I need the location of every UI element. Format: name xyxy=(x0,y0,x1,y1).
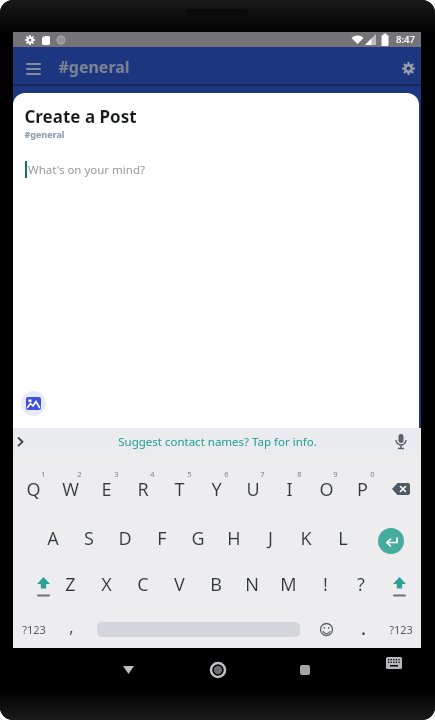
staticText: Suggest contact names? Tap for info. xyxy=(118,434,317,450)
button[interactable]: Suggest contact names? Tap for info. xyxy=(13,428,421,455)
button[interactable]: E xyxy=(88,468,124,510)
button[interactable]: L xyxy=(325,517,361,559)
button[interactable] xyxy=(26,564,60,604)
staticText: Create a Post xyxy=(24,105,137,128)
staticText: R xyxy=(137,477,149,502)
button[interactable]: O xyxy=(308,468,344,510)
button[interactable]: C xyxy=(125,563,161,605)
button[interactable] xyxy=(21,57,45,81)
button[interactable]: P xyxy=(344,468,380,510)
staticText: 3 xyxy=(114,469,119,479)
button[interactable]: A xyxy=(35,517,71,559)
staticText: 6 xyxy=(224,469,229,479)
staticText: , xyxy=(69,616,74,638)
button[interactable] xyxy=(206,658,230,682)
staticText: S xyxy=(84,526,94,551)
staticText: H xyxy=(227,526,241,551)
button[interactable] xyxy=(382,564,416,604)
button[interactable] xyxy=(378,528,404,554)
button[interactable]: M xyxy=(270,563,306,605)
button[interactable] xyxy=(384,478,418,500)
staticText: T xyxy=(174,477,185,502)
staticText: V xyxy=(174,572,185,597)
button[interactable] xyxy=(293,658,317,682)
staticText: 2 xyxy=(77,469,82,479)
staticText: P xyxy=(357,477,368,502)
button[interactable]: S xyxy=(71,517,107,559)
staticText: O xyxy=(319,477,334,502)
button[interactable] xyxy=(396,56,420,80)
staticText: C xyxy=(137,572,149,597)
staticText: 0 xyxy=(370,469,375,479)
button[interactable]: ?123 xyxy=(16,608,52,650)
button[interactable]: ?123 xyxy=(383,608,419,650)
staticText: L xyxy=(338,526,348,551)
button[interactable]: ? xyxy=(343,563,379,605)
staticText: ?123 xyxy=(22,622,46,637)
staticText: What's on your mind? xyxy=(28,162,145,178)
staticText: Y xyxy=(211,477,222,502)
button[interactable]: X xyxy=(88,563,124,605)
button[interactable] xyxy=(314,617,338,641)
staticText: I xyxy=(286,477,293,502)
button[interactable]: F xyxy=(144,517,180,559)
button[interactable]: U xyxy=(235,468,271,510)
staticText: B xyxy=(210,572,222,597)
button[interactable]: I xyxy=(271,468,307,510)
staticText: U xyxy=(246,477,260,502)
button[interactable]: R xyxy=(125,468,161,510)
staticText: ? xyxy=(357,572,365,597)
staticText: . xyxy=(361,618,366,640)
button[interactable]: B xyxy=(198,563,234,605)
staticText: 8:47 xyxy=(396,33,415,46)
staticText: G xyxy=(191,526,205,551)
button[interactable]: Q xyxy=(15,468,51,510)
button[interactable] xyxy=(116,658,140,682)
button[interactable]: N xyxy=(234,563,270,605)
button[interactable] xyxy=(21,391,46,416)
staticText: 7 xyxy=(260,469,265,479)
button[interactable]: Z xyxy=(52,563,88,605)
button[interactable]: What's on your mind? xyxy=(24,155,404,185)
staticText: 4 xyxy=(150,469,155,479)
button[interactable]: J xyxy=(252,517,288,559)
staticText: E xyxy=(101,477,112,502)
staticText: J xyxy=(268,526,273,551)
staticText: Q xyxy=(26,477,41,502)
staticText: #general xyxy=(24,128,65,140)
staticText: #general xyxy=(58,56,130,78)
button[interactable]: G xyxy=(180,517,216,559)
button[interactable]: . xyxy=(345,608,381,650)
staticText: ! xyxy=(323,572,328,597)
staticText: K xyxy=(300,526,312,551)
staticText: 1 xyxy=(41,469,46,479)
button[interactable]: ! xyxy=(307,563,343,605)
staticText: ?123 xyxy=(389,622,413,637)
button[interactable]: K xyxy=(288,517,324,559)
staticText: 9 xyxy=(333,469,338,479)
button[interactable]: V xyxy=(161,563,197,605)
staticText: 5 xyxy=(187,469,192,479)
button[interactable]: D xyxy=(107,517,143,559)
staticText: M xyxy=(280,572,297,597)
button[interactable]: H xyxy=(216,517,252,559)
button[interactable]: W xyxy=(52,468,88,510)
staticText: F xyxy=(157,526,167,551)
staticText: X xyxy=(101,572,112,597)
staticText: A xyxy=(47,526,59,551)
button[interactable] xyxy=(381,650,407,676)
button[interactable]: Y xyxy=(198,468,234,510)
button[interactable]: , xyxy=(53,606,89,648)
staticText: Z xyxy=(65,572,76,597)
staticText: W xyxy=(62,477,79,502)
staticText: D xyxy=(118,526,132,551)
button[interactable]: T xyxy=(161,468,197,510)
staticText: 8 xyxy=(297,469,302,479)
staticText: N xyxy=(245,572,259,597)
